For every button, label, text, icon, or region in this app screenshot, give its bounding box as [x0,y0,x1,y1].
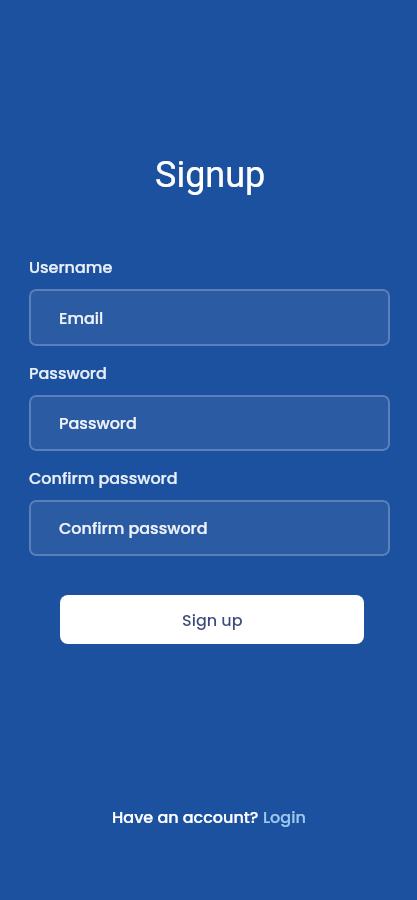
button[interactable]: Sign up [60,595,364,644]
staticText: Confirm password [29,467,178,489]
staticText: Password [59,412,137,434]
button[interactable]: Login [263,806,306,828]
staticText: Confirm password [59,517,208,539]
button[interactable]: Password [29,395,390,451]
button[interactable]: Email [29,289,390,346]
staticText: Sign up [182,609,243,631]
staticText: Have an account? [112,806,263,828]
staticText: Email [59,307,104,329]
staticText: Username [29,256,113,278]
staticText: Signup [155,154,266,196]
staticText: Password [29,362,107,384]
button[interactable]: Confirm password [29,500,390,556]
staticText: Login [263,806,306,828]
